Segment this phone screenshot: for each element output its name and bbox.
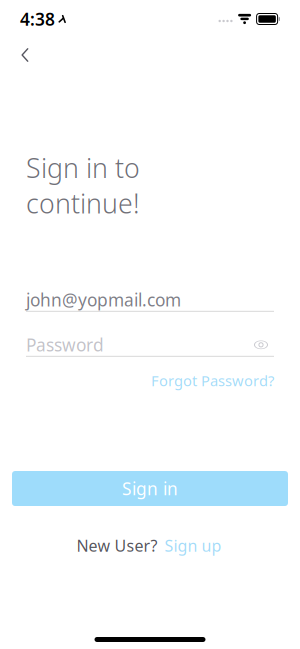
staticText: 4:38	[20, 7, 55, 30]
staticText: Sign up	[164, 535, 221, 556]
staticText: Sign in to continue!	[26, 150, 140, 221]
button[interactable]: Show password	[248, 335, 274, 355]
button[interactable]: Back	[8, 38, 42, 72]
button[interactable]: Sign in	[12, 471, 288, 506]
staticText: New User?	[76, 535, 157, 556]
button[interactable]: Forgot Password?	[151, 367, 274, 394]
staticText: john@yopmail.com	[26, 288, 181, 311]
staticText: Sign in	[122, 477, 178, 500]
staticText: Password	[26, 333, 104, 356]
button[interactable]: Sign up	[162, 531, 223, 560]
staticText: Forgot Password?	[151, 371, 274, 390]
